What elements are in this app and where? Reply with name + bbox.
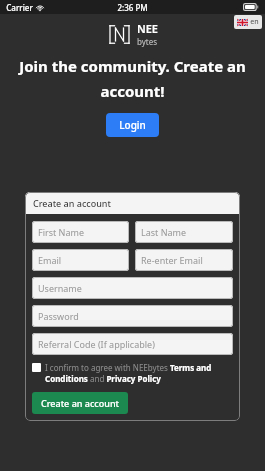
- button[interactable]: Create an account: [32, 392, 128, 414]
- button[interactable]: First Name: [32, 221, 129, 243]
- staticText: First Name: [38, 226, 84, 238]
- button[interactable]: Language: en: [234, 15, 262, 29]
- staticText: Create an account: [33, 197, 111, 209]
- staticText: Email: [38, 254, 62, 266]
- staticText: Create an account: [41, 397, 119, 409]
- button[interactable]: I confirm to agree with NEEbytes Terms a…: [45, 362, 233, 384]
- other: NEEbytes logo: [107, 23, 132, 46]
- staticText: bytes: [137, 36, 158, 47]
- staticText: Last Name: [141, 226, 187, 238]
- button[interactable]: Email: [32, 249, 129, 271]
- staticText: en: [250, 17, 259, 27]
- button[interactable]: Last Name: [135, 221, 233, 243]
- button[interactable]: Re-enter Email: [135, 249, 233, 271]
- staticText: NEE: [137, 21, 158, 36]
- button[interactable]: Username: [32, 277, 233, 299]
- button[interactable]: Login: [106, 113, 159, 137]
- button[interactable]: Referral Code (If applicable): [32, 333, 233, 355]
- button[interactable]: Agree to terms checkbox: [32, 363, 41, 372]
- staticText: Carrier: [6, 2, 33, 13]
- staticText: Password: [38, 310, 79, 322]
- staticText: Re-enter Email: [141, 254, 203, 266]
- staticText: Login: [119, 118, 146, 132]
- staticText: account!: [100, 81, 165, 101]
- staticText: Username: [38, 282, 82, 294]
- staticText: Referral Code (If applicable): [38, 338, 155, 350]
- button[interactable]: Password: [32, 305, 233, 327]
- staticText: Join the community. Create an: [19, 56, 246, 76]
- staticText: 2:36 PM: [117, 2, 148, 13]
